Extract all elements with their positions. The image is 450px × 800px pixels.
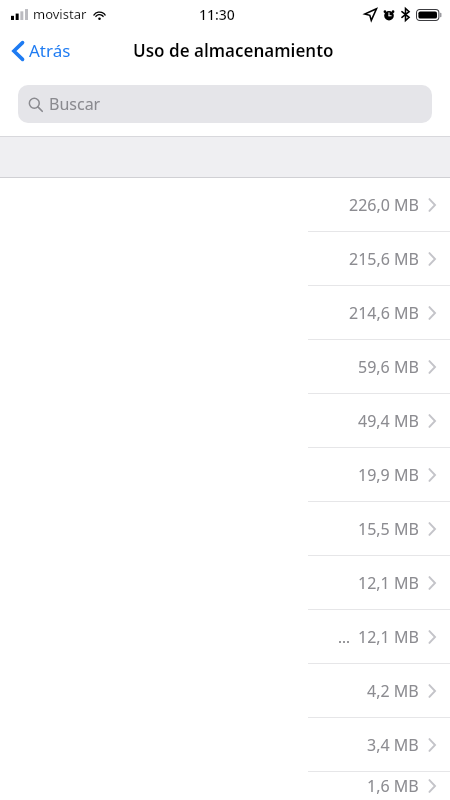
- other: Ver detalles: [428, 360, 436, 374]
- staticText: 59,6 MB: [358, 356, 419, 378]
- staticText: 15,5 MB: [358, 518, 419, 540]
- staticText: 12,1 MB: [358, 626, 419, 648]
- button[interactable]: 3,4 MB: [0, 718, 450, 771]
- other: Ver detalles: [428, 414, 436, 428]
- staticText: Buscar: [49, 93, 101, 115]
- button[interactable]: Atrás: [8, 35, 75, 66]
- button[interactable]: 12,1 MB: [0, 556, 450, 609]
- staticText: 12,1 MB: [358, 572, 419, 594]
- other: Ver detalles: [428, 738, 436, 752]
- button[interactable]: 226,0 MB: [0, 178, 450, 231]
- staticText: 11:30: [199, 5, 235, 24]
- button[interactable]: ...: [0, 610, 450, 663]
- staticText: ...: [338, 627, 351, 647]
- button[interactable]: 15,5 MB: [0, 502, 450, 555]
- other: Ver detalles: [428, 576, 436, 590]
- staticText: 4,2 MB: [367, 680, 419, 702]
- other: Ver detalles: [428, 779, 436, 793]
- staticText: Atrás: [29, 39, 71, 62]
- button[interactable]: 214,6 MB: [0, 286, 450, 339]
- button[interactable]: Buscar: [18, 85, 432, 123]
- other: Ver detalles: [428, 468, 436, 482]
- staticText: 214,6 MB: [349, 302, 419, 324]
- staticText: Uso de almacenamiento: [133, 39, 334, 62]
- other: Ver detalles: [428, 252, 436, 266]
- staticText: 49,4 MB: [358, 410, 419, 432]
- button[interactable]: 19,9 MB: [0, 448, 450, 501]
- other: Ver detalles: [428, 306, 436, 320]
- staticText: 1,6 MB: [367, 775, 419, 797]
- other: Ver detalles: [428, 522, 436, 536]
- button[interactable]: 1,6 MB: [0, 772, 450, 800]
- staticText: movistar: [33, 5, 87, 23]
- other: Ver detalles: [428, 630, 436, 644]
- button[interactable]: 59,6 MB: [0, 340, 450, 393]
- button[interactable]: 215,6 MB: [0, 232, 450, 285]
- staticText: 215,6 MB: [349, 248, 419, 270]
- other: Ver detalles: [428, 684, 436, 698]
- button[interactable]: 4,2 MB: [0, 664, 450, 717]
- button[interactable]: 49,4 MB: [0, 394, 450, 447]
- staticText: 3,4 MB: [367, 734, 419, 756]
- other: Ver detalles: [428, 198, 436, 212]
- staticText: 19,9 MB: [358, 464, 419, 486]
- staticText: 226,0 MB: [349, 194, 419, 216]
